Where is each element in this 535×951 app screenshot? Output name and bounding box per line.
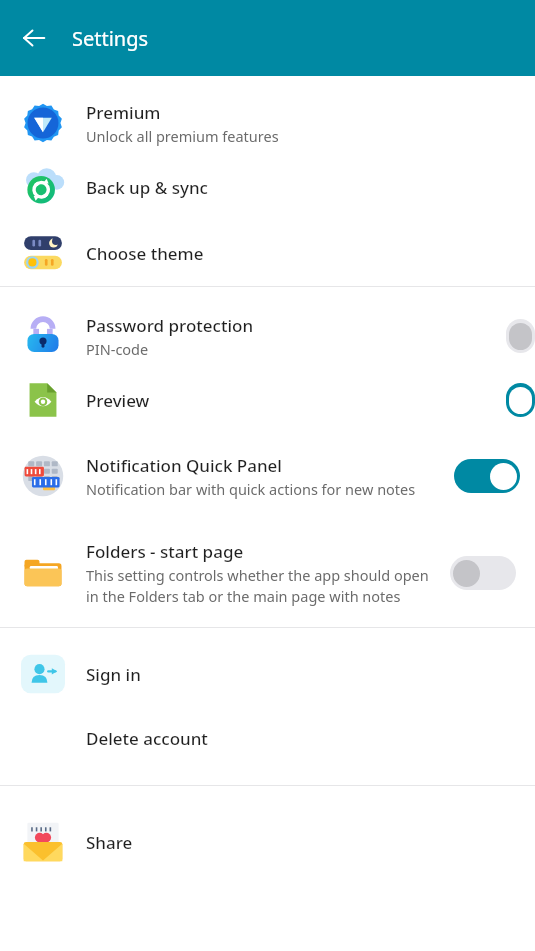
staticText: Settings: [72, 25, 149, 52]
button[interactable]: Premium: [0, 92, 535, 154]
staticText: Choose theme: [86, 242, 204, 265]
button[interactable]: Choose theme: [0, 220, 535, 286]
staticText: Preview: [86, 389, 150, 412]
button[interactable]: Switch off: [506, 319, 535, 353]
staticText: This setting controls whether the app sh…: [86, 565, 430, 607]
staticText: Delete account: [86, 727, 208, 750]
button[interactable]: Sign in: [0, 642, 535, 706]
staticText: Premium: [86, 101, 161, 124]
button[interactable]: Share: [0, 812, 535, 872]
staticText: Unlock all premium features: [86, 126, 279, 146]
button[interactable]: Switch on: [506, 383, 535, 417]
button[interactable]: Notification Quick Panel: [0, 433, 535, 519]
button[interactable]: Delete account: [0, 706, 535, 770]
button[interactable]: Folders - start page: [0, 519, 535, 627]
button[interactable]: Back up & sync: [0, 154, 535, 220]
staticText: PIN-code: [86, 339, 149, 359]
button[interactable]: Password protection: [0, 305, 535, 367]
staticText: Back up & sync: [86, 176, 208, 199]
staticText: Notification Quick Panel: [86, 454, 282, 477]
staticText: Password protection: [86, 314, 254, 337]
button[interactable]: Switch on: [454, 459, 520, 493]
staticText: Notification bar with quick actions for …: [86, 479, 416, 499]
button[interactable]: Preview: [0, 367, 535, 433]
staticText: Folders - start page: [86, 540, 244, 563]
staticText: Sign in: [86, 663, 141, 686]
staticText: Share: [86, 831, 133, 854]
button[interactable]: Switch off: [450, 556, 516, 590]
button[interactable]: Back: [13, 17, 55, 59]
